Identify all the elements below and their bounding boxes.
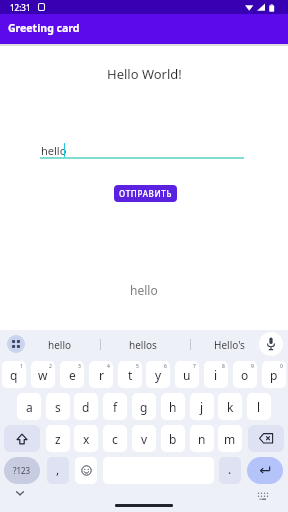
button[interactable]: k: [218, 393, 242, 420]
button[interactable]: [248, 425, 284, 452]
staticText: m: [224, 431, 236, 447]
button[interactable]: Hello's: [199, 337, 259, 352]
staticText: u: [183, 367, 191, 383]
staticText: c: [112, 431, 118, 447]
button[interactable]: g: [132, 393, 156, 420]
staticText: x: [83, 431, 90, 447]
button[interactable]: c: [103, 425, 127, 452]
staticText: i: [214, 367, 218, 383]
staticText: 1: [20, 363, 23, 370]
staticText: h: [169, 399, 177, 415]
staticText: z: [55, 431, 61, 447]
staticText: ?123: [13, 465, 31, 476]
staticText: w: [38, 367, 48, 383]
button[interactable]: [4, 425, 40, 452]
staticText: p: [270, 367, 278, 383]
button[interactable]: v: [132, 425, 156, 452]
staticText: 5: [136, 363, 139, 370]
button[interactable]: hellos: [113, 337, 173, 352]
button[interactable]: [7, 335, 25, 353]
staticText: ,: [56, 461, 60, 477]
button[interactable]: r: [89, 361, 113, 388]
button[interactable]: x: [74, 425, 98, 452]
button[interactable]: b: [161, 425, 185, 452]
button[interactable]: i: [204, 361, 228, 388]
button[interactable]: z: [46, 425, 70, 452]
button[interactable]: f: [103, 393, 127, 420]
staticText: 8: [222, 363, 225, 370]
staticText: s: [55, 399, 61, 415]
button[interactable]: q: [2, 361, 26, 388]
button[interactable]: y: [146, 361, 170, 388]
staticText: .: [228, 461, 232, 477]
button[interactable]: j: [190, 393, 214, 420]
staticText: k: [227, 399, 234, 415]
staticText: Hello's: [214, 338, 245, 352]
button[interactable]: ,: [47, 457, 69, 484]
staticText: g: [140, 399, 148, 415]
button[interactable]: u: [175, 361, 199, 388]
button[interactable]: hello: [30, 337, 90, 352]
button[interactable]: ОТПРАВИТЬ: [114, 185, 177, 202]
staticText: 2: [49, 363, 52, 370]
staticText: d: [82, 399, 90, 415]
staticText: a: [26, 399, 33, 415]
button[interactable]: l: [247, 393, 271, 420]
staticText: 7: [193, 363, 196, 370]
button[interactable]: o: [233, 361, 257, 388]
button[interactable]: s: [46, 393, 70, 420]
staticText: 3: [78, 363, 81, 370]
staticText: y: [155, 367, 162, 383]
button[interactable]: a: [17, 393, 41, 420]
button[interactable]: .: [219, 457, 241, 484]
staticText: 0: [280, 363, 283, 370]
button[interactable]: ?123: [4, 457, 40, 484]
staticText: t: [128, 367, 133, 383]
staticText: hello: [130, 282, 158, 298]
staticText: Hello World!: [107, 65, 182, 83]
staticText: 4: [107, 363, 110, 370]
button[interactable]: [247, 457, 283, 484]
staticText: ОТПРАВИТЬ: [119, 188, 173, 199]
button[interactable]: e: [60, 361, 84, 388]
button[interactable]: d: [74, 393, 98, 420]
staticText: 9: [251, 363, 254, 370]
staticText: hello: [48, 338, 72, 352]
button[interactable]: [75, 457, 97, 484]
button[interactable]: [259, 332, 283, 356]
staticText: n: [198, 431, 206, 447]
staticText: hello: [41, 143, 67, 158]
button[interactable]: n: [190, 425, 214, 452]
staticText: l: [257, 399, 261, 415]
staticText: v: [141, 431, 148, 447]
button[interactable]: h: [161, 393, 185, 420]
staticText: b: [169, 431, 177, 447]
staticText: o: [241, 367, 249, 383]
staticText: q: [10, 367, 18, 383]
staticText: Greeting card: [8, 21, 80, 35]
button[interactable]: t: [118, 361, 142, 388]
staticText: f: [113, 399, 118, 415]
staticText: e: [69, 367, 76, 383]
staticText: r: [99, 367, 104, 383]
staticText: 6: [164, 363, 167, 370]
button[interactable]: p: [262, 361, 286, 388]
button[interactable]: m: [218, 425, 242, 452]
staticText: hellos: [129, 338, 157, 352]
staticText: 12:31: [10, 2, 31, 13]
button[interactable]: w: [31, 361, 55, 388]
staticText: j: [200, 399, 204, 415]
